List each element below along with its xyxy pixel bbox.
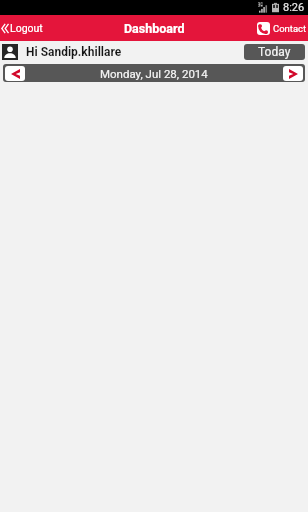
staticText: Hi Sandip.khillare: [26, 45, 122, 59]
staticText: 8:26: [283, 1, 305, 14]
button[interactable]: Logout: [0, 22, 49, 34]
staticText: Dashboard: [124, 21, 185, 36]
button[interactable]: Next day: [283, 66, 303, 81]
staticText: Monday, Jul 28, 2014: [100, 67, 208, 80]
staticText: Today: [258, 45, 291, 59]
staticText: Contact: [273, 23, 307, 34]
button[interactable]: Contact: [251, 22, 308, 35]
button[interactable]: Previous day: [5, 66, 25, 81]
button[interactable]: Today: [244, 44, 305, 60]
staticText: Logout: [10, 22, 43, 34]
